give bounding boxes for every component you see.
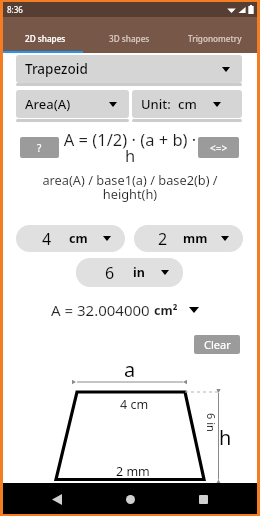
staticText: cm² — [154, 302, 178, 319]
staticText: 4 cm — [120, 396, 149, 413]
staticText: mm — [183, 230, 208, 247]
staticText: h — [219, 424, 232, 451]
button[interactable]: ? — [20, 137, 59, 158]
button[interactable]: Home — [117, 486, 143, 512]
button[interactable]: Recents — [190, 486, 216, 512]
staticText: area(A) / base1(a) / base2(b) / height(h… — [40, 171, 220, 203]
staticText: 6 in — [204, 413, 219, 432]
staticText: cm — [178, 95, 197, 113]
staticText: A = (1/2) · (a + b) · h — [61, 128, 199, 166]
staticText: Unit: — [141, 95, 171, 113]
button[interactable]: 2 — [134, 225, 243, 252]
staticText: 2 — [158, 228, 168, 250]
staticText: Clear — [204, 337, 231, 352]
button[interactable]: Unit: — [132, 90, 242, 118]
staticText: cm — [69, 230, 88, 247]
staticText: ? — [37, 141, 42, 155]
button[interactable]: <=> — [198, 137, 239, 158]
button[interactable]: Trigonometry — [172, 17, 257, 53]
button[interactable]: Back — [44, 486, 70, 512]
button[interactable]: 6 — [76, 258, 183, 287]
staticText: 8:36 — [7, 4, 23, 15]
staticText: 2D shapes — [25, 33, 66, 44]
staticText: Trigonometry — [188, 33, 242, 44]
button[interactable]: 4 — [16, 225, 125, 252]
staticText: Area(A) — [25, 95, 71, 113]
button[interactable]: 3D shapes — [87, 17, 172, 53]
staticText: 2 mm — [116, 463, 150, 480]
staticText: in — [133, 264, 145, 281]
button[interactable]: 2D shapes — [3, 17, 87, 53]
staticText: a — [124, 356, 136, 383]
staticText: 3D shapes — [109, 33, 150, 44]
button[interactable]: Area(A) — [16, 90, 129, 118]
staticText: <=> — [210, 141, 228, 155]
button[interactable]: Clear — [194, 335, 240, 354]
staticText: 6 — [105, 262, 115, 284]
button[interactable]: Trapezoid — [16, 55, 242, 83]
staticText: Trapezoid — [25, 60, 88, 78]
staticText: A = 32.004000 — [51, 300, 150, 320]
staticText: 4 — [42, 228, 52, 250]
